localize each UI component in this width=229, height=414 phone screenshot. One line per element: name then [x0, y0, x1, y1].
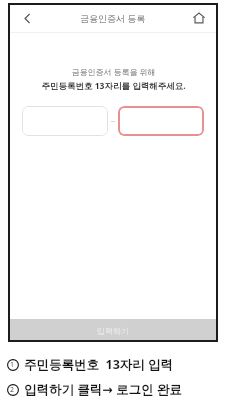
staticText: 입력하기: [97, 326, 129, 336]
staticText: 금융인증서 등록: [80, 12, 146, 24]
button[interactable]: 입력하기: [8, 319, 218, 342]
button[interactable]: 주민등록번호 앞자리 입력: [22, 106, 108, 136]
button[interactable]: Home: [187, 6, 211, 30]
staticText: 주민등록번호 13자리 입력: [24, 356, 174, 373]
button[interactable]: 주민등록번호 뒷자리 입력: [118, 106, 204, 136]
staticText: 입력하기 클릭→ 로그인 완료: [24, 381, 182, 398]
button[interactable]: Back: [14, 5, 40, 31]
staticText: 2: [10, 385, 15, 395]
staticText: 금융인증서 등록을 위해: [71, 66, 156, 77]
staticText: 1: [10, 360, 15, 370]
staticText: 주민등록번호 13자리를 입력해주세요.: [41, 80, 186, 92]
